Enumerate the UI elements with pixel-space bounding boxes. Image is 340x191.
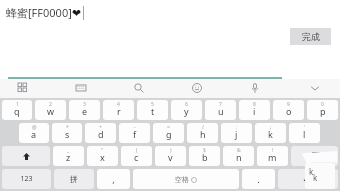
button[interactable]: 完成 xyxy=(290,28,331,45)
staticText: w xyxy=(47,105,55,117)
staticText: ' xyxy=(304,124,306,131)
staticText: y xyxy=(184,105,189,117)
staticText: a xyxy=(31,128,37,140)
staticText: k xyxy=(309,166,314,177)
staticText: . xyxy=(257,173,260,185)
button[interactable]: = xyxy=(153,123,184,143)
button[interactable]: 拼 xyxy=(54,169,94,189)
button[interactable]: 0 xyxy=(307,100,338,120)
button[interactable] xyxy=(2,146,50,166)
button[interactable]: Apps xyxy=(14,79,32,97)
button[interactable]: / xyxy=(187,123,218,143)
button[interactable]: 3 xyxy=(69,100,100,120)
staticText: u xyxy=(218,105,224,117)
staticText: 9 xyxy=(287,101,290,108)
staticText: , xyxy=(112,173,115,185)
staticText: z xyxy=(66,151,71,163)
button[interactable]: ; xyxy=(255,123,286,143)
button[interactable]: Hide keyboard xyxy=(306,79,324,97)
staticText: 拼 xyxy=(70,174,78,184)
button[interactable]: + xyxy=(85,123,116,143)
staticText: ( xyxy=(136,147,138,154)
button[interactable]: Keyboard xyxy=(72,79,90,97)
staticText: - xyxy=(134,124,136,131)
button[interactable]: ( xyxy=(121,146,152,166)
staticText: j xyxy=(235,128,238,140)
staticText: h xyxy=(200,128,206,140)
staticText: 123 xyxy=(20,174,33,184)
button[interactable]: " xyxy=(87,146,118,166)
staticText: x xyxy=(100,151,105,163)
staticText: & xyxy=(237,147,241,154)
staticText: $ xyxy=(203,147,206,154)
button[interactable]: $ xyxy=(189,146,220,166)
button[interactable] xyxy=(278,169,338,189)
staticText: o xyxy=(286,105,292,117)
button[interactable]: 9 xyxy=(273,100,304,120)
button[interactable]: 2 xyxy=(35,100,66,120)
staticText: ! xyxy=(272,147,274,154)
button[interactable] xyxy=(291,146,338,166)
staticText: @ xyxy=(32,124,37,131)
staticText: i xyxy=(253,105,256,117)
staticText: m xyxy=(268,151,277,163)
staticText: d xyxy=(98,128,104,140)
staticText: 3 xyxy=(83,101,86,108)
button[interactable]: 1 xyxy=(2,100,32,120)
staticText: b xyxy=(202,151,208,163)
button[interactable]: 5 xyxy=(137,100,168,120)
button[interactable]: . xyxy=(242,169,275,189)
staticText: g xyxy=(166,128,172,140)
staticText: c xyxy=(134,151,139,163)
staticText: 2 xyxy=(49,101,52,108)
staticText: l xyxy=(303,128,306,140)
button[interactable]: ! xyxy=(257,146,288,166)
button[interactable]: 8 xyxy=(239,100,270,120)
staticText: k xyxy=(313,172,318,183)
staticText: _ xyxy=(67,147,70,154)
staticText: p xyxy=(320,105,326,117)
staticText: 4 xyxy=(117,101,120,108)
staticText: + xyxy=(99,124,102,131)
button[interactable]: 123 xyxy=(2,169,51,189)
button[interactable]: ' xyxy=(289,123,320,143)
button[interactable]: 4 xyxy=(103,100,134,120)
staticText: 空格 xyxy=(175,175,189,184)
staticText: t xyxy=(151,105,155,117)
button[interactable]: Voice input xyxy=(246,79,264,97)
staticText: 5 xyxy=(151,101,154,108)
button[interactable]: , xyxy=(97,169,130,189)
staticText: r xyxy=(117,105,121,117)
staticText: ) xyxy=(170,147,172,154)
staticText: 完成 xyxy=(302,31,320,42)
button[interactable]: - xyxy=(119,123,150,143)
button[interactable]: Emoji xyxy=(188,79,206,97)
staticText: 8 xyxy=(253,101,256,108)
staticText: 1 xyxy=(16,101,19,108)
staticText: k xyxy=(268,128,273,140)
staticText: v xyxy=(168,151,173,163)
staticText: f xyxy=(133,128,137,140)
button[interactable]: & xyxy=(223,146,254,166)
button[interactable]: ) xyxy=(155,146,186,166)
staticText: 0 xyxy=(321,101,324,108)
button[interactable]: _ xyxy=(53,146,84,166)
staticText: = xyxy=(167,124,170,131)
staticText: * xyxy=(66,124,69,131)
staticText: n xyxy=(236,151,242,163)
staticText: 6 xyxy=(185,101,188,108)
staticText: 蜂蜜[FF0000]❤ xyxy=(6,5,82,20)
staticText: " xyxy=(101,147,104,154)
staticText: / xyxy=(202,124,204,131)
staticText: s xyxy=(65,128,70,140)
button[interactable]: Search xyxy=(130,79,148,97)
button[interactable]: @ xyxy=(19,123,49,143)
button[interactable]: 7 xyxy=(205,100,236,120)
button[interactable]: 空格 xyxy=(133,169,239,189)
button[interactable]: 6 xyxy=(171,100,202,120)
staticText: ; xyxy=(270,124,272,131)
button[interactable]: : xyxy=(221,123,252,143)
staticText: q xyxy=(14,105,20,117)
staticText: : xyxy=(236,124,238,131)
button[interactable]: * xyxy=(52,123,82,143)
